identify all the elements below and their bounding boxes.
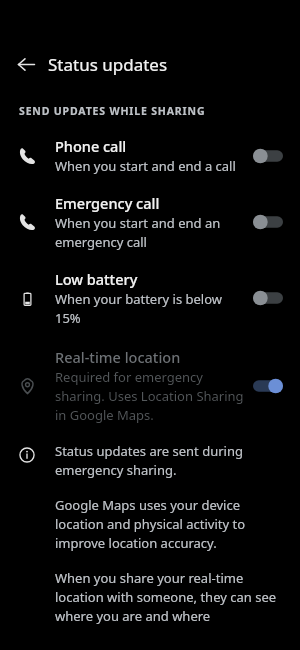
staticText: Phone call xyxy=(55,136,127,156)
button[interactable]: Low battery toggle xyxy=(250,283,286,313)
staticText: SEND UPDATES WHILE SHARING xyxy=(19,104,206,118)
staticText: When you start and end a call xyxy=(55,157,236,175)
staticText: Google Maps uses your device location an… xyxy=(55,496,282,552)
button[interactable]: Phone call toggle xyxy=(250,141,286,171)
staticText: When your battery is below 15% xyxy=(55,290,244,327)
staticText: Required for emergency sharing. Uses Loc… xyxy=(55,368,244,424)
button[interactable]: Emergency call toggle xyxy=(250,207,286,237)
staticText: When you start and end an emergency call xyxy=(55,214,244,251)
staticText: When you share your real-time location w… xyxy=(55,569,282,625)
button[interactable]: Back xyxy=(8,46,44,82)
button[interactable]: Real-time location xyxy=(0,345,300,426)
staticText: Real-time location xyxy=(55,347,181,367)
staticText: Status updates xyxy=(48,53,168,76)
button[interactable]: Real-time location toggle xyxy=(250,371,286,401)
staticText: Status updates are sent during emergency… xyxy=(55,442,282,479)
staticText: Emergency call xyxy=(55,193,160,213)
button[interactable]: Low battery xyxy=(0,267,300,329)
button[interactable]: Emergency call xyxy=(0,191,300,253)
button[interactable]: Phone call xyxy=(0,134,300,177)
staticText: Low battery xyxy=(55,269,138,289)
